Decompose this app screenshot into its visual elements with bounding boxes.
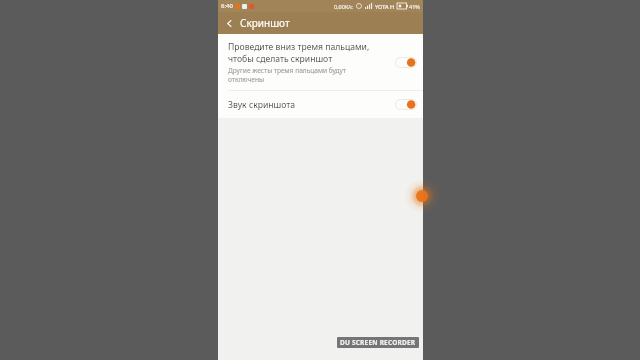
button[interactable]: Toggle xyxy=(395,98,417,111)
staticText: Звук скриншота xyxy=(228,99,395,111)
button[interactable]: Проведите вниз тремя пальцами, чтобы сде… xyxy=(218,34,423,90)
staticText: Проведите вниз тремя пальцами, чтобы сде… xyxy=(228,41,370,64)
button[interactable]: Back xyxy=(218,12,240,34)
button[interactable]: Звук скриншота xyxy=(218,91,423,118)
staticText: DU SCREEN RECORDER xyxy=(340,338,416,347)
staticText: 0,00K/c xyxy=(334,3,354,10)
staticText: Скриншот xyxy=(240,16,290,30)
staticText: 41% xyxy=(409,3,420,10)
button[interactable]: Recorder floating button xyxy=(404,178,440,214)
button[interactable]: Toggle xyxy=(395,56,417,69)
staticText: Другие жесты тремя пальцами будут отключ… xyxy=(228,66,347,84)
staticText: 6:40 xyxy=(221,2,233,10)
staticText: YOTA H xyxy=(375,3,395,10)
